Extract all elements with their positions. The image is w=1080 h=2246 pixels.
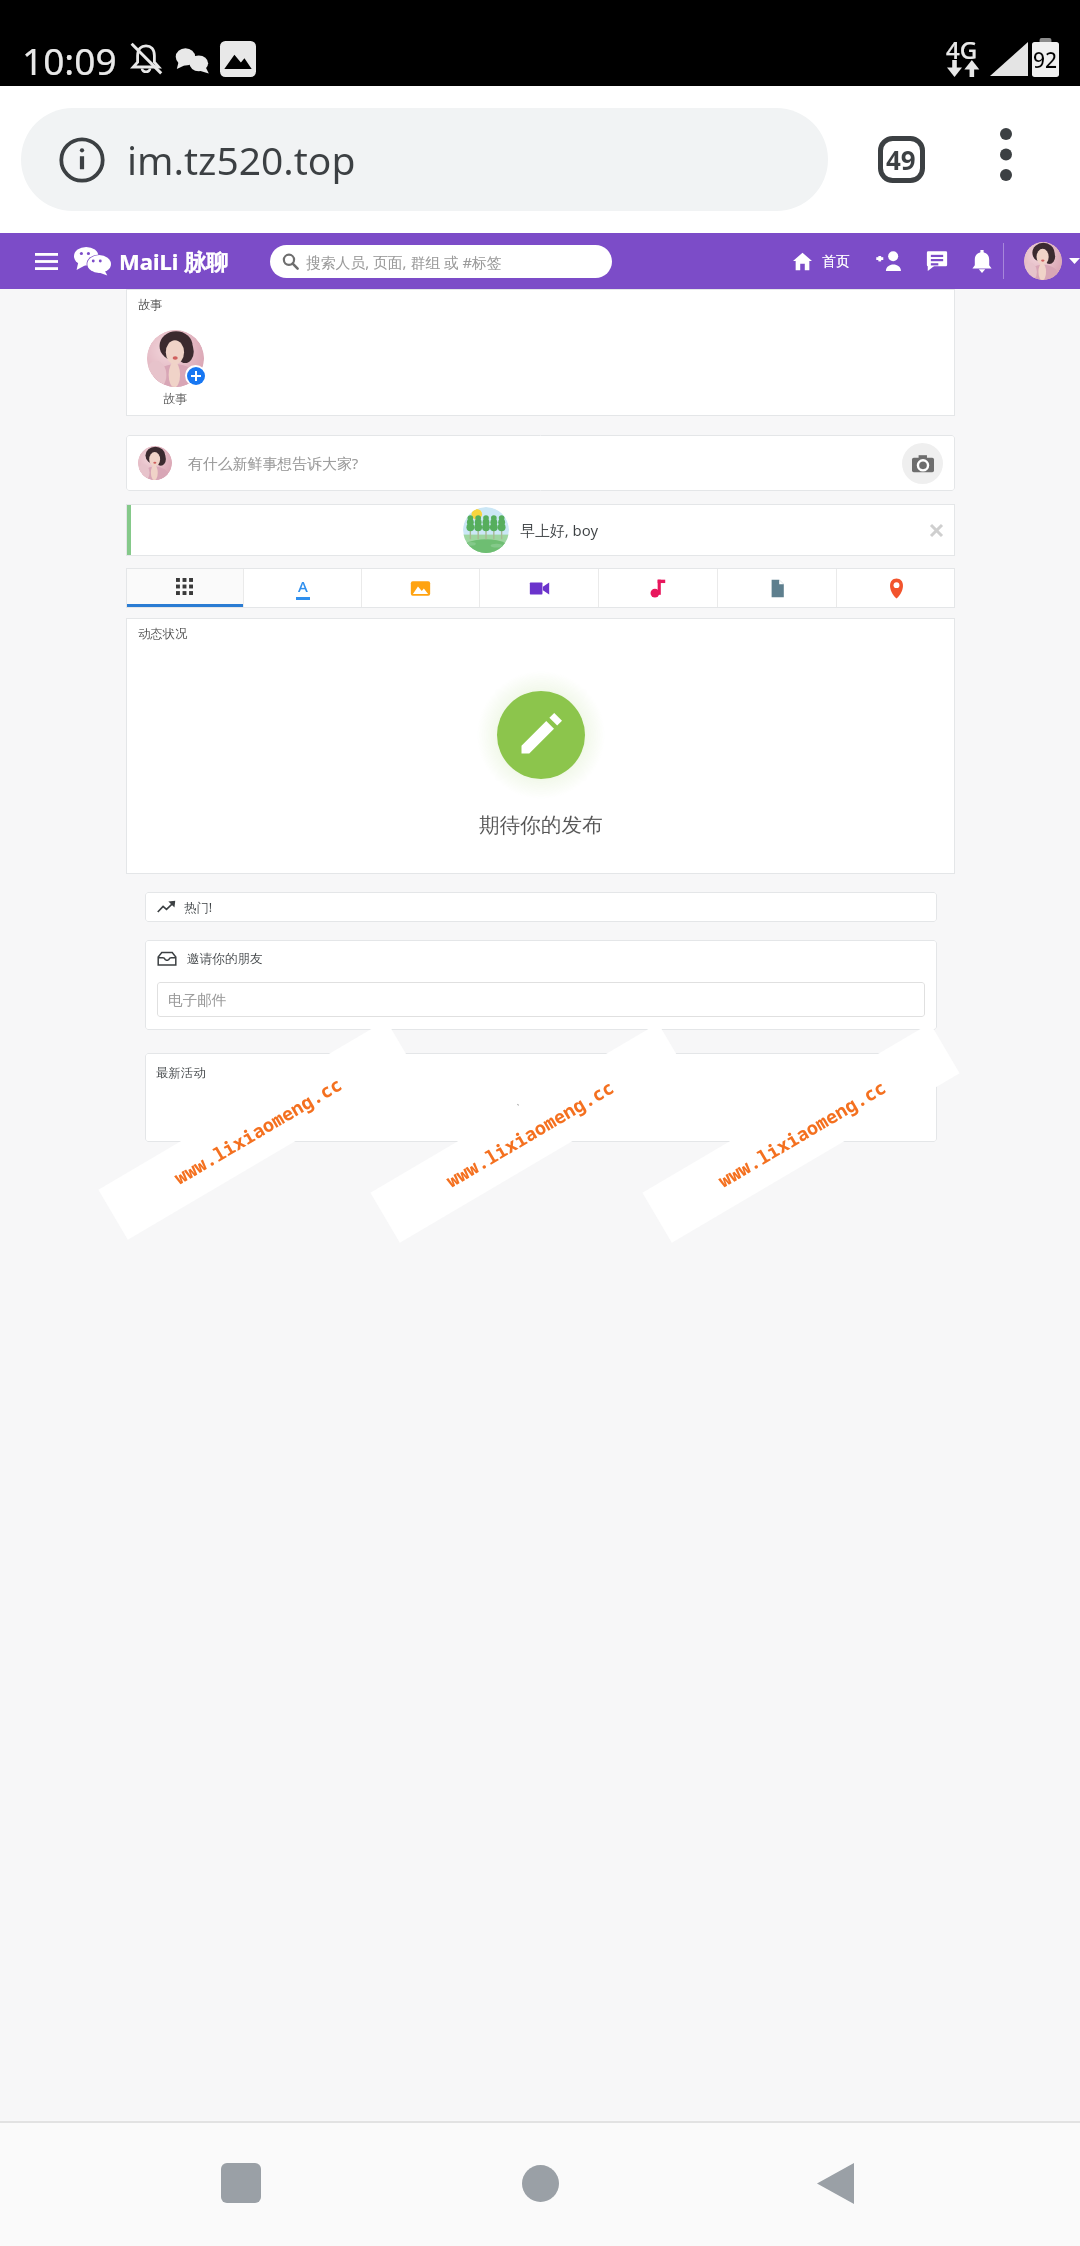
staticText: im.tz520.top <box>127 133 356 186</box>
staticText: A <box>298 576 308 596</box>
button[interactable]: Location <box>837 568 955 608</box>
button[interactable]: Home <box>499 2142 581 2224</box>
staticText: 故事 <box>163 391 188 406</box>
staticText: 首页 <box>822 253 850 270</box>
button[interactable]: All <box>126 568 243 608</box>
staticText: 4G <box>946 33 978 66</box>
staticText: 故事 <box>138 297 163 312</box>
button[interactable]: Menu <box>26 239 66 283</box>
button[interactable]: Text <box>244 568 361 608</box>
staticText: 邀请你的朋友 <box>187 951 263 967</box>
staticText: 最新活动 <box>156 1065 206 1081</box>
button[interactable]: Account <box>1024 242 1080 280</box>
button[interactable]: Messages <box>920 244 954 278</box>
button[interactable]: More options <box>974 122 1038 186</box>
button[interactable]: 热门! <box>145 892 937 922</box>
staticText: 没有动态 <box>516 1102 566 1118</box>
button[interactable]: Photo <box>362 568 479 608</box>
button[interactable]: Recents <box>200 2142 282 2224</box>
button[interactable]: Create post <box>497 691 585 779</box>
staticText: www.lixiaomeng.cc <box>713 1074 890 1192</box>
staticText: 电子邮件 <box>168 991 227 1009</box>
button[interactable]: im.tz520.top <box>21 108 828 211</box>
button[interactable]: 故事 <box>147 330 204 406</box>
button[interactable]: 首页 <box>793 252 850 271</box>
staticText: 期待你的发布 <box>479 812 603 838</box>
button[interactable]: Tabs <box>868 126 934 192</box>
staticText: 热门! <box>184 899 213 916</box>
staticText: www.lixiaomeng.cc <box>169 1071 346 1189</box>
staticText: 动态状况 <box>138 626 188 641</box>
button[interactable]: Back <box>794 2142 876 2224</box>
staticText: 有什么新鲜事想告诉大家? <box>188 453 359 473</box>
staticText: 49 <box>886 142 916 177</box>
staticText: 92 <box>1033 46 1058 75</box>
button[interactable]: File <box>718 568 836 608</box>
staticText: MaiLi 脉聊 <box>119 246 229 276</box>
button[interactable]: Add friend <box>872 244 906 278</box>
button[interactable]: Close <box>922 516 950 544</box>
staticText: 早上好, boy <box>520 520 598 540</box>
button[interactable]: 电子邮件 <box>157 982 925 1017</box>
button[interactable]: Add photo <box>902 443 943 484</box>
button[interactable]: Notifications <box>965 244 999 278</box>
button[interactable]: 有什么新鲜事想告诉大家? <box>126 435 955 491</box>
staticText: www.lixiaomeng.cc <box>441 1074 618 1192</box>
button[interactable]: Music <box>599 568 717 608</box>
staticText: 搜索人员, 页面, 群组 或 #标签 <box>306 252 502 272</box>
staticText: 10:09 <box>22 35 117 85</box>
button[interactable]: 搜索人员, 页面, 群组 或 #标签 <box>270 245 612 278</box>
button[interactable]: Video <box>480 568 598 608</box>
button[interactable]: MaiLi 脉聊 <box>74 246 229 276</box>
